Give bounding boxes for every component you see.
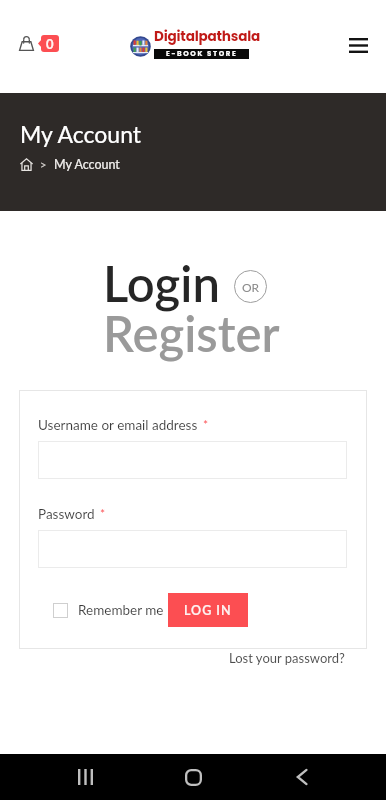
button[interactable]: Register — [103, 304, 280, 363]
staticText: Remember me — [78, 602, 164, 618]
button[interactable]: Login — [103, 254, 220, 313]
staticText: Digitalpathsala — [154, 27, 261, 46]
button[interactable]: Digitalpathsala — [130, 27, 261, 59]
staticText: LOG IN — [184, 603, 232, 618]
staticText: My Account — [20, 120, 142, 148]
staticText: 0 — [46, 36, 54, 52]
button[interactable]: Lost your password? — [229, 650, 345, 666]
button[interactable]: LOG IN — [168, 593, 248, 627]
button[interactable]: Cart — [11, 32, 68, 59]
staticText: * — [100, 506, 106, 520]
staticText: Username or email address — [38, 417, 198, 433]
staticText: * — [203, 417, 209, 431]
staticText: E-BOOK STORE — [166, 49, 238, 59]
staticText: Password — [38, 506, 95, 522]
button[interactable]: Back — [278, 754, 326, 800]
staticText: OR — [242, 280, 260, 294]
button[interactable]: Menu — [340, 28, 376, 62]
staticText: My Account — [54, 157, 120, 172]
button[interactable]: Home — [169, 754, 217, 800]
button[interactable]: Remember me — [38, 602, 164, 618]
button[interactable]: Recent apps — [61, 754, 109, 800]
staticText: > — [40, 158, 47, 171]
